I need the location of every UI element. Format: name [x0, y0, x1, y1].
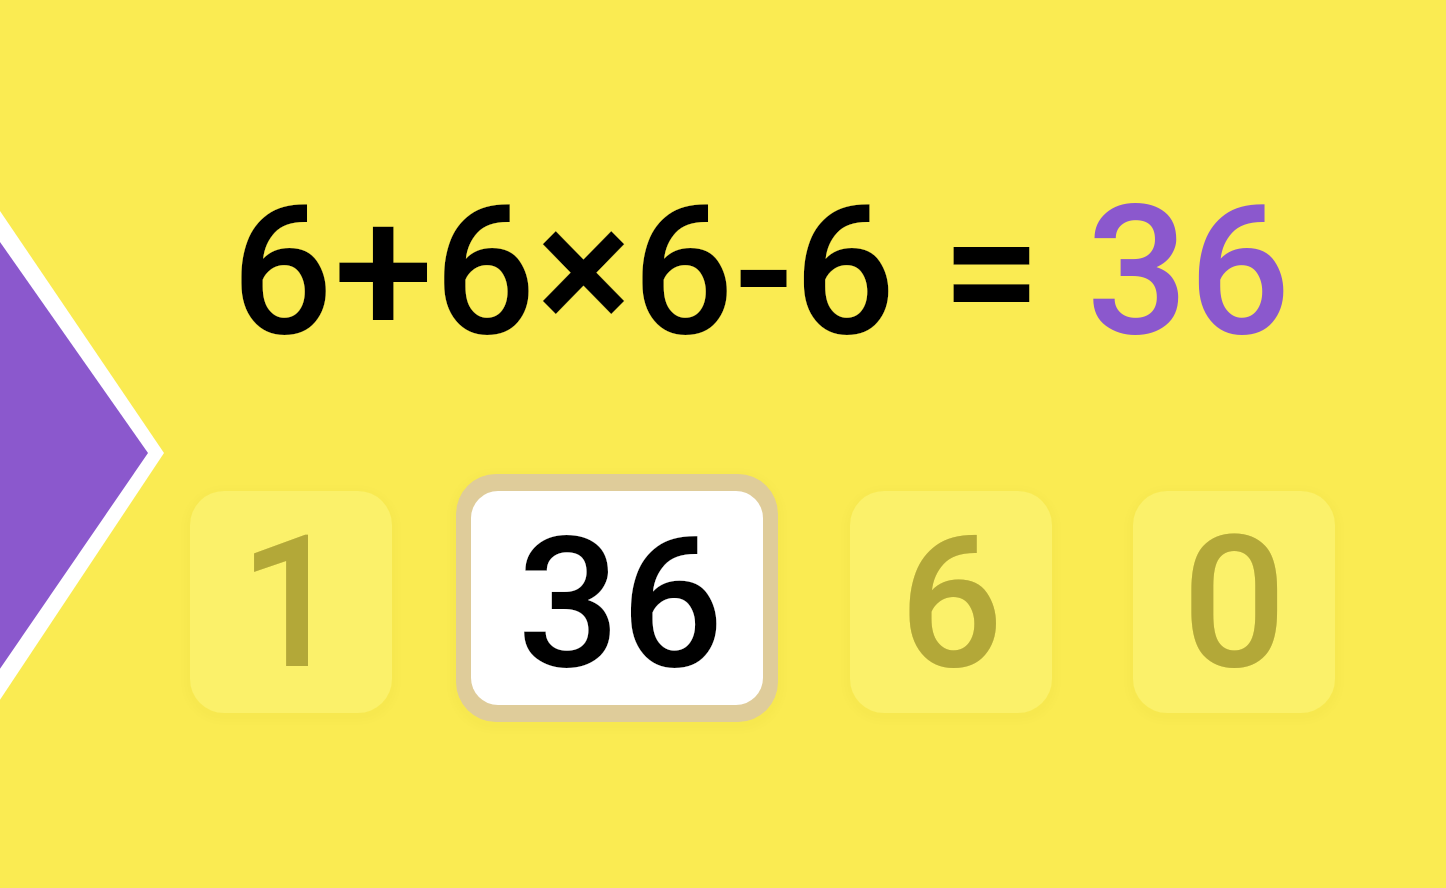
staticText: 1	[239, 495, 344, 711]
staticText: 36	[517, 497, 724, 705]
staticText: 0	[1182, 495, 1287, 711]
staticText: 6	[899, 495, 1004, 711]
button[interactable]: 36	[456, 474, 778, 722]
button[interactable]: 6	[850, 491, 1052, 713]
staticText: 6+6×6-6 = 36	[231, 166, 1291, 377]
button[interactable]: 1	[190, 491, 392, 713]
button[interactable]: 0	[1133, 491, 1335, 713]
